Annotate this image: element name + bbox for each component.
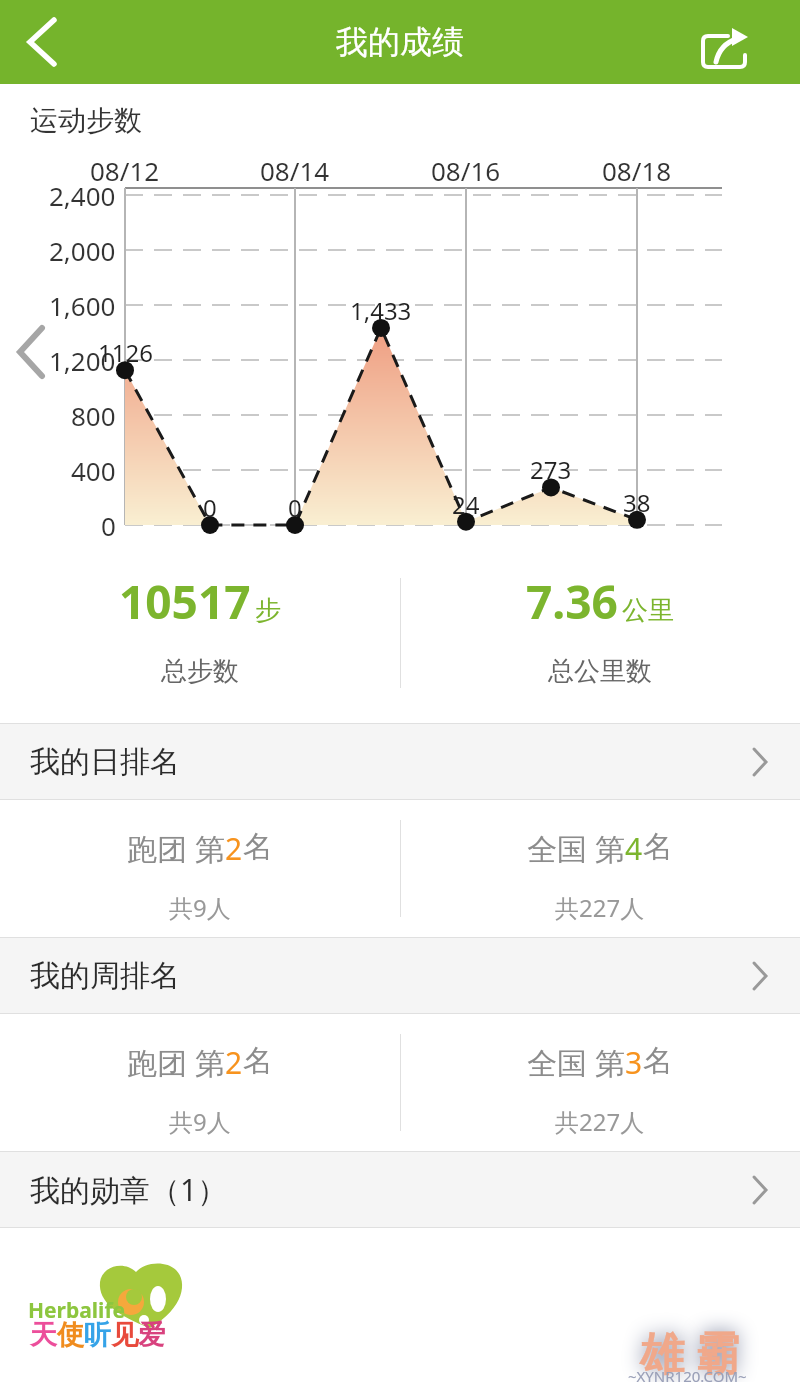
staticText: 公里 bbox=[622, 594, 674, 627]
staticText: 听 bbox=[84, 1318, 111, 1352]
staticText: 运动步数 bbox=[30, 103, 142, 138]
staticText: 38 bbox=[623, 486, 651, 519]
staticText: 08/14 bbox=[260, 153, 330, 188]
staticText: 400 bbox=[71, 453, 116, 488]
staticText: 全国 第 bbox=[527, 828, 625, 869]
staticText: 跑团 第 bbox=[127, 828, 225, 869]
button[interactable]: 我的成绩 bbox=[0, 0, 800, 84]
staticText: 名 bbox=[243, 828, 273, 866]
staticText: 名 bbox=[243, 1042, 273, 1080]
staticText: 4 bbox=[625, 828, 643, 869]
staticText: 跑团 第 bbox=[127, 1042, 225, 1083]
button[interactable]: 跑团 第 bbox=[0, 1028, 400, 1151]
button[interactable]: 全国 第 bbox=[400, 1028, 800, 1151]
staticText: 08/16 bbox=[431, 153, 501, 188]
staticText: 2 bbox=[225, 1042, 243, 1083]
staticText: 爱 bbox=[138, 1318, 165, 1352]
staticText: 10517 bbox=[119, 570, 251, 633]
staticText: 0 bbox=[288, 491, 302, 524]
staticText: 08/12 bbox=[90, 153, 160, 188]
staticText: 1126 bbox=[98, 336, 153, 369]
button[interactable] bbox=[18, 12, 66, 72]
staticText: 名 bbox=[643, 828, 673, 866]
staticText: 共9人 bbox=[169, 891, 231, 924]
button[interactable]: 跑团 第 bbox=[0, 814, 400, 937]
staticText: 1,200 bbox=[49, 343, 116, 378]
staticText: 0 bbox=[101, 508, 116, 543]
staticText: 总步数 bbox=[161, 655, 239, 688]
staticText: 1,433 bbox=[350, 294, 412, 327]
staticText: 总公里数 bbox=[548, 655, 652, 688]
staticText: 2,000 bbox=[49, 233, 116, 268]
staticText: 步 bbox=[255, 594, 281, 627]
staticText: 2 bbox=[225, 828, 243, 869]
staticText: 我的勋章（1） bbox=[30, 1169, 228, 1210]
staticText: 24 bbox=[452, 488, 480, 521]
staticText: ~XYNR120.COM~ bbox=[628, 1366, 747, 1382]
staticText: 我的日排名 bbox=[30, 743, 180, 781]
staticText: 800 bbox=[71, 398, 116, 433]
button[interactable]: 我的周排名 bbox=[0, 937, 800, 1014]
staticText: 1,600 bbox=[49, 288, 116, 323]
staticText: 3 bbox=[625, 1042, 643, 1083]
button[interactable]: 我的日排名 bbox=[0, 723, 800, 800]
staticText: 7.36 bbox=[526, 570, 618, 633]
staticText: 我的周排名 bbox=[30, 957, 180, 995]
staticText: 08/18 bbox=[602, 153, 672, 188]
button[interactable]: 全国 第 bbox=[400, 814, 800, 937]
staticText: 0 bbox=[203, 491, 217, 524]
staticText: 共227人 bbox=[555, 1105, 645, 1138]
staticText: 雄 霸 bbox=[640, 1322, 740, 1382]
staticText: 273 bbox=[530, 453, 572, 486]
staticText: 名 bbox=[643, 1042, 673, 1080]
staticText: 全国 第 bbox=[527, 1042, 625, 1083]
staticText: 2,400 bbox=[49, 178, 116, 213]
staticText: 共227人 bbox=[555, 891, 645, 924]
staticText: 我的成绩 bbox=[336, 22, 464, 62]
button[interactable]: 我的勋章（1） bbox=[0, 1151, 800, 1228]
button[interactable] bbox=[694, 22, 756, 74]
staticText: Herbalife bbox=[28, 1296, 126, 1325]
staticText: 使 bbox=[57, 1318, 84, 1352]
staticText: 共9人 bbox=[169, 1105, 231, 1138]
staticText: 天 bbox=[30, 1318, 57, 1352]
staticText: 见 bbox=[111, 1318, 138, 1352]
